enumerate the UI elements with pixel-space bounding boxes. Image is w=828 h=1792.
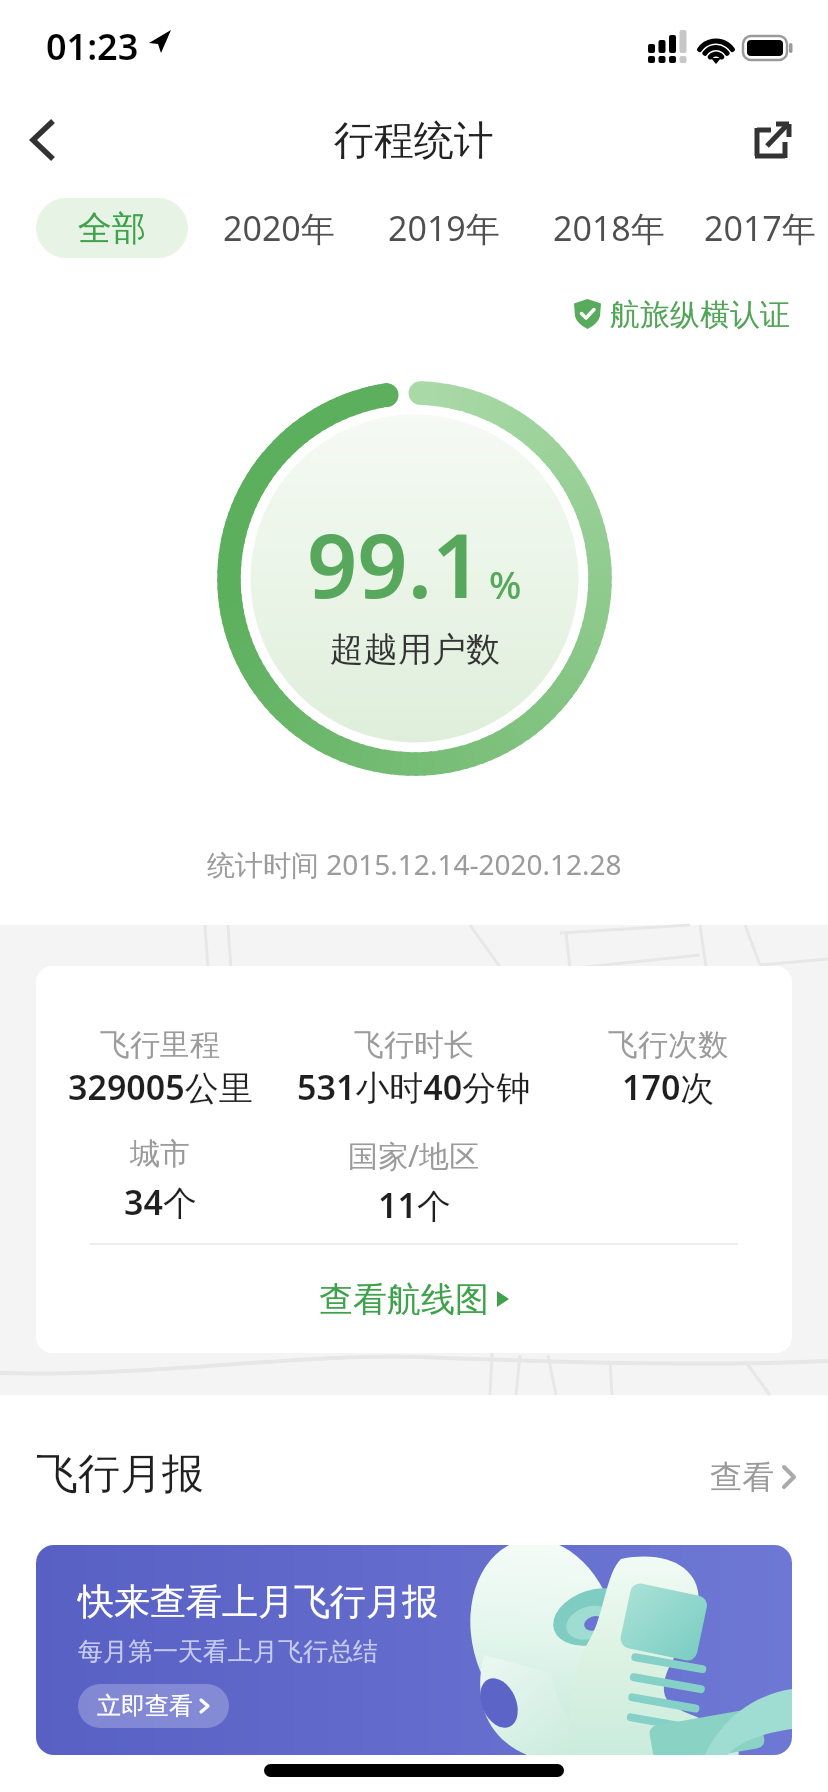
staticText: 查看航线图 (319, 1278, 489, 1321)
button[interactable]: 2017年 (691, 198, 828, 258)
button[interactable]: 查看航线图 (36, 1269, 792, 1329)
button[interactable]: 全部 (36, 198, 188, 258)
staticText: 11个 (378, 1182, 451, 1228)
staticText: 2017年 (704, 205, 816, 251)
staticText: 统计时间 2015.12.14-2020.12.28 (207, 845, 622, 883)
staticText: 行程统计 (334, 115, 494, 165)
staticText: 01:23 (46, 22, 139, 62)
staticText: 2020年 (223, 205, 335, 251)
button[interactable] (748, 115, 798, 165)
button[interactable]: 2018年 (526, 198, 691, 258)
staticText: 每月第一天看上月飞行总结 (78, 1636, 378, 1667)
staticText: 快来查看上月飞行月报 (78, 1579, 438, 1624)
staticText: 2018年 (553, 205, 665, 251)
staticText: 329005公里 (68, 1064, 253, 1110)
staticText: 超越用户数 (330, 628, 500, 671)
staticText: 34个 (124, 1179, 197, 1225)
staticText: 查看 (710, 1457, 774, 1497)
staticText: 飞行时长 (354, 1026, 474, 1064)
button[interactable] (16, 108, 68, 172)
button[interactable]: 2020年 (196, 198, 361, 258)
staticText: 飞行次数 (608, 1026, 728, 1064)
staticText: 全部 (78, 207, 146, 250)
staticText: 170次 (622, 1064, 715, 1110)
staticText: % (489, 558, 522, 610)
staticText: 立即查看 (97, 1691, 193, 1721)
button[interactable]: 快来查看上月飞行月报 (36, 1545, 792, 1755)
button[interactable]: 2019年 (361, 198, 526, 258)
staticText: 国家/地区 (348, 1135, 480, 1176)
staticText: 531小时40分钟 (297, 1064, 531, 1110)
staticText: 航旅纵横认证 (610, 296, 790, 332)
staticText: 99.1 (307, 504, 483, 624)
staticText: 城市 (130, 1135, 190, 1173)
staticText: 飞行里程 (100, 1026, 220, 1064)
staticText: 2019年 (388, 205, 500, 251)
staticText: 飞行月报 (36, 1448, 204, 1501)
button[interactable]: 查看 (710, 1457, 796, 1497)
button[interactable]: 立即查看 (97, 1684, 210, 1728)
